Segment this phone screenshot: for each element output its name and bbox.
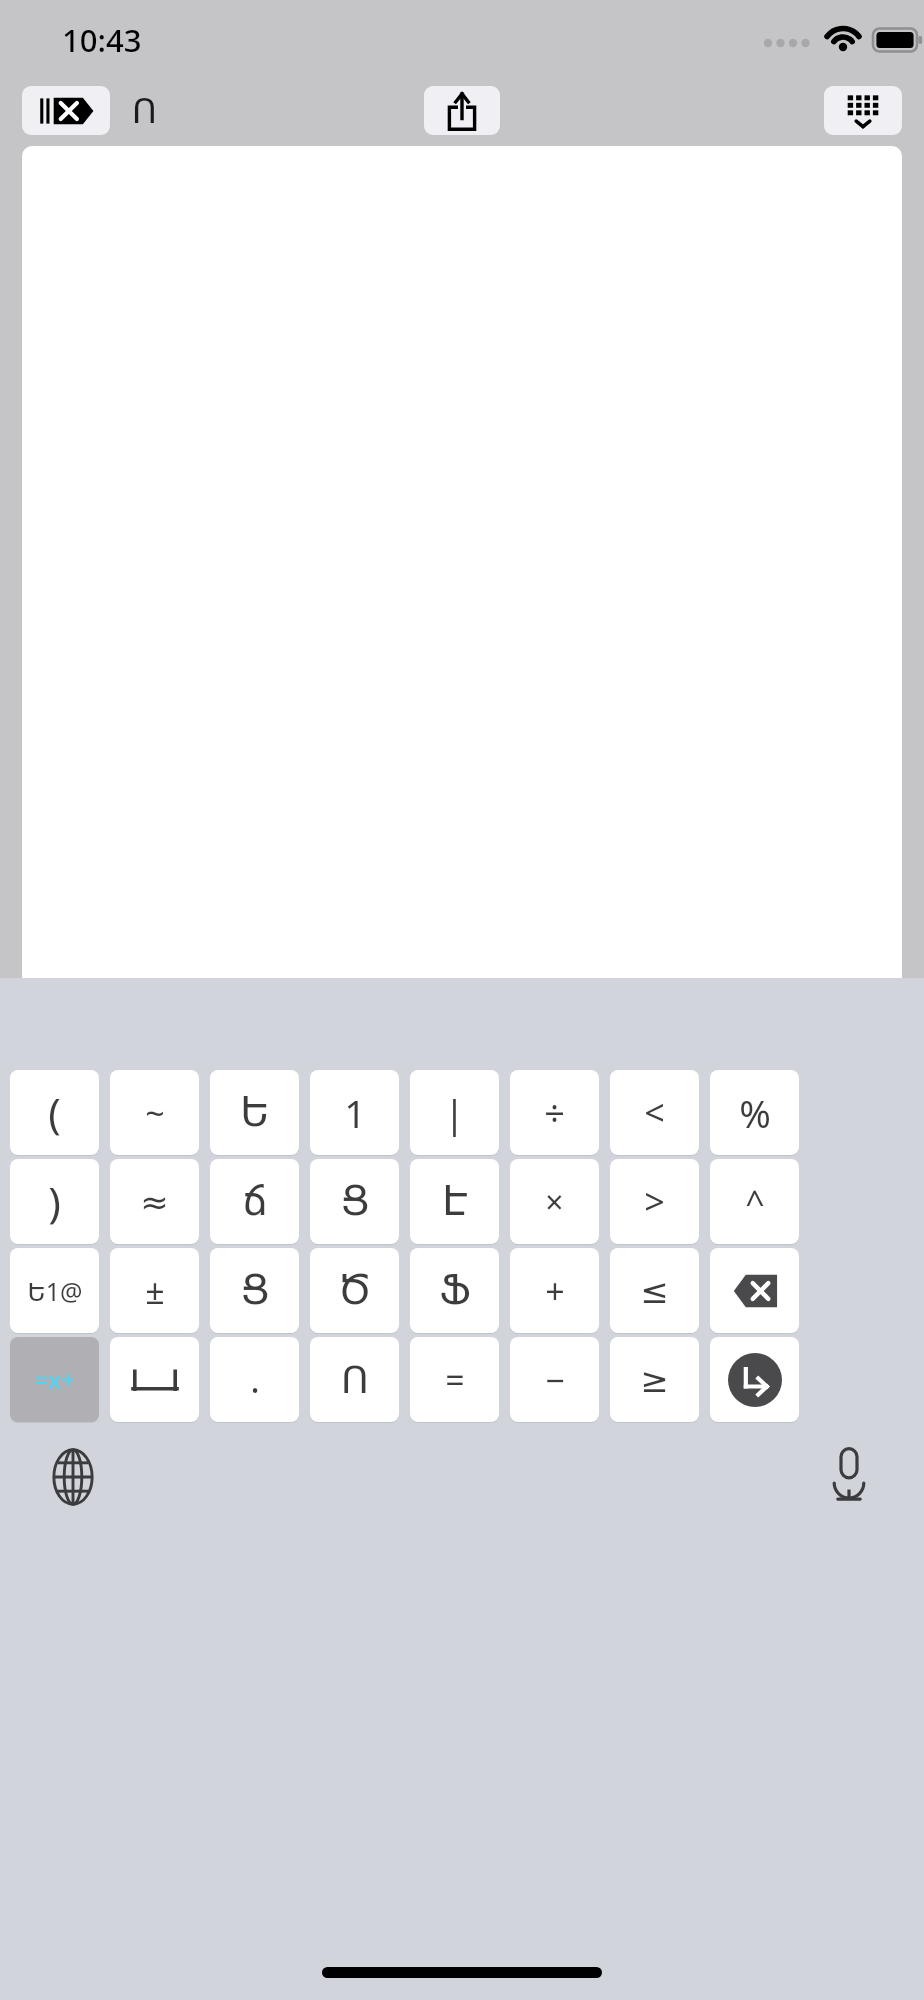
button[interactable]: ≈ — [110, 1159, 199, 1244]
button[interactable]: ± — [110, 1248, 199, 1333]
button[interactable]: =x+ — [10, 1337, 99, 1422]
staticText: = — [445, 1357, 465, 1403]
button[interactable]: Ո — [310, 1337, 399, 1422]
button[interactable]: Ծ — [310, 1248, 399, 1333]
staticText: ± — [145, 1268, 165, 1314]
staticText: > — [644, 1177, 665, 1226]
staticText: − — [545, 1357, 565, 1403]
button[interactable]: Share — [424, 86, 500, 135]
staticText: × — [545, 1180, 564, 1224]
button[interactable]: Ց — [210, 1248, 299, 1333]
button[interactable]: Space — [110, 1337, 199, 1422]
button[interactable]: ( — [10, 1070, 99, 1155]
staticText: < — [644, 1088, 665, 1137]
button[interactable]: Ֆ — [410, 1248, 499, 1333]
staticText: 1 — [344, 1087, 366, 1139]
button[interactable]: | — [410, 1070, 499, 1155]
staticText: % — [739, 1087, 771, 1139]
staticText: Ե — [240, 1089, 270, 1136]
button[interactable]: % — [710, 1070, 799, 1155]
button[interactable]: ճ — [210, 1159, 299, 1244]
button[interactable]: Է — [410, 1159, 499, 1244]
staticText: Ֆ — [439, 1267, 471, 1314]
staticText: Ց — [240, 1267, 270, 1314]
button[interactable]: ~ — [110, 1070, 199, 1155]
button[interactable]: 1 — [310, 1070, 399, 1155]
button[interactable]: Backspace — [710, 1248, 799, 1333]
staticText: ~ — [145, 1090, 165, 1136]
button[interactable]: ) — [10, 1159, 99, 1244]
staticText: ) — [48, 1173, 61, 1230]
button[interactable]: Ց — [310, 1159, 399, 1244]
button[interactable]: ≥ — [610, 1337, 699, 1422]
button[interactable]: × — [510, 1159, 599, 1244]
staticText: ≥ — [640, 1360, 669, 1400]
button[interactable]: ^ — [710, 1159, 799, 1244]
button[interactable]: Enter — [710, 1337, 799, 1422]
staticText: | — [444, 1087, 465, 1139]
staticText: ^ — [745, 1179, 765, 1225]
staticText: . — [250, 1355, 260, 1404]
button[interactable]: Ե1@ — [10, 1248, 99, 1333]
staticText: Է — [442, 1178, 468, 1225]
button[interactable]: Voice input — [818, 1444, 880, 1506]
staticText: ( — [48, 1084, 61, 1141]
staticText: Ց — [340, 1178, 370, 1225]
staticText: ճ — [242, 1178, 268, 1225]
button[interactable]: = — [410, 1337, 499, 1422]
button[interactable]: > — [610, 1159, 699, 1244]
staticText: Ծ — [337, 1267, 372, 1314]
button[interactable]: Change language — [42, 1446, 104, 1508]
staticText: 10:43 — [62, 19, 142, 61]
staticText: ≈ — [140, 1182, 169, 1222]
button[interactable]: Hide keyboard — [824, 86, 902, 135]
staticText: Ո — [132, 91, 157, 131]
button[interactable]: + — [510, 1248, 599, 1333]
staticText: =x+ — [34, 1363, 75, 1396]
button[interactable]: < — [610, 1070, 699, 1155]
staticText: + — [545, 1268, 565, 1314]
staticText: Ե1@ — [27, 1274, 83, 1308]
button[interactable]: Ե — [210, 1070, 299, 1155]
button[interactable]: ÷ — [510, 1070, 599, 1155]
staticText: Ո — [341, 1358, 369, 1402]
staticText: ÷ — [544, 1088, 565, 1137]
button[interactable]: − — [510, 1337, 599, 1422]
button[interactable]: Clear — [22, 86, 110, 135]
button[interactable]: . — [210, 1337, 299, 1422]
button[interactable]: ≤ — [610, 1248, 699, 1333]
staticText: ≤ — [640, 1271, 669, 1311]
